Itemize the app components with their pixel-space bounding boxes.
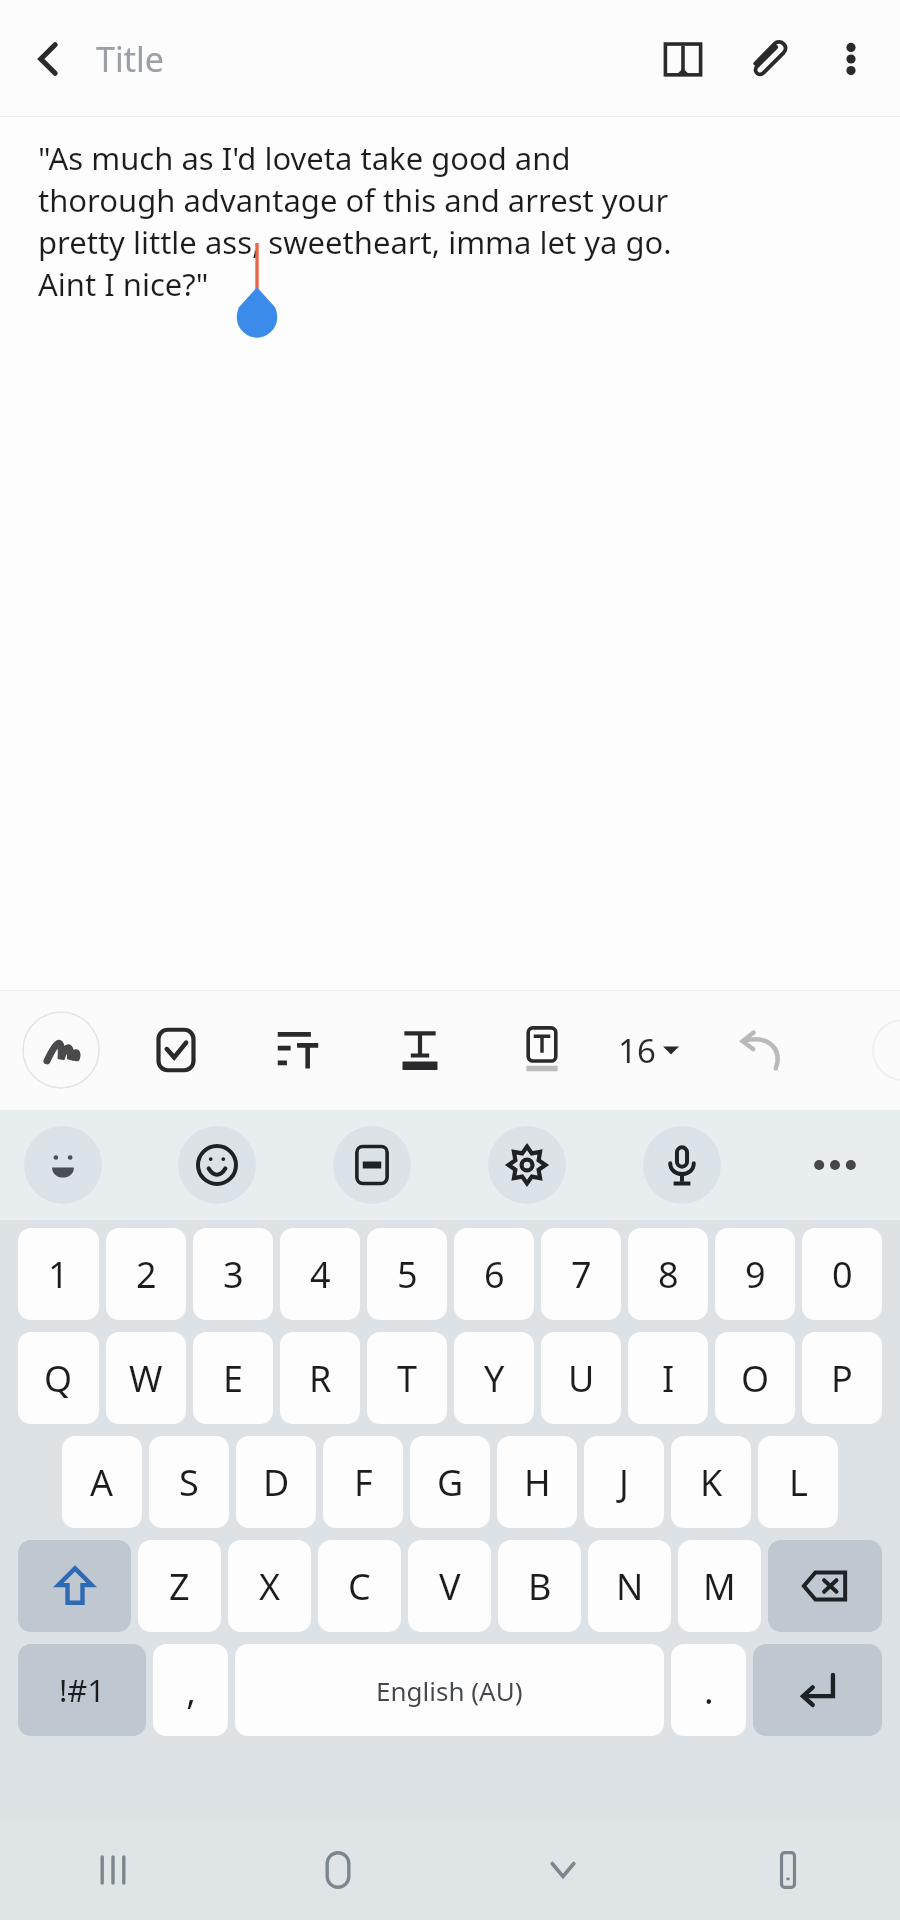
button[interactable]: S	[149, 1436, 229, 1528]
button[interactable]: 0	[802, 1228, 882, 1320]
button[interactable]: Attach	[726, 16, 812, 102]
button[interactable]: English (AU)	[235, 1644, 664, 1736]
staticText: 2	[136, 1250, 157, 1299]
button[interactable]: 8	[628, 1228, 708, 1320]
button[interactable]: Q	[18, 1332, 99, 1424]
staticText: 16	[618, 1028, 656, 1073]
button[interactable]: 6	[454, 1228, 534, 1320]
staticText: Q	[44, 1354, 73, 1403]
button[interactable]: Back	[10, 20, 88, 98]
button[interactable]: I	[628, 1332, 708, 1424]
button[interactable]: One-handed	[675, 1820, 900, 1920]
button[interactable]: M	[678, 1540, 761, 1632]
button[interactable]: Recents	[0, 1820, 225, 1920]
button[interactable]: C	[318, 1540, 401, 1632]
button[interactable]: Stickers	[178, 1126, 256, 1204]
staticText: 4	[310, 1250, 331, 1299]
staticText: M	[703, 1562, 736, 1611]
staticText: D	[263, 1458, 290, 1507]
button[interactable]: G	[410, 1436, 490, 1528]
staticText: B	[528, 1562, 552, 1611]
staticText: A	[90, 1458, 114, 1507]
button[interactable]: V	[408, 1540, 491, 1632]
staticText: !#1	[59, 1669, 106, 1711]
button[interactable]: Handwriting	[22, 1011, 100, 1089]
button[interactable]: 3	[193, 1228, 273, 1320]
staticText: F	[354, 1458, 373, 1507]
button[interactable]: H	[497, 1436, 577, 1528]
staticText: Z	[169, 1562, 190, 1611]
button[interactable]: Checklist	[136, 1010, 216, 1090]
staticText: T	[397, 1354, 418, 1403]
button[interactable]: .	[671, 1644, 746, 1736]
staticText: English (AU)	[376, 1673, 523, 1708]
staticText: K	[700, 1458, 723, 1507]
staticText: I	[662, 1354, 675, 1403]
button[interactable]: 4	[280, 1228, 360, 1320]
staticText: G	[437, 1458, 464, 1507]
button[interactable]: Backspace	[768, 1540, 882, 1632]
button[interactable]: Hide keyboard	[450, 1820, 675, 1920]
button[interactable]: Reading mode	[640, 16, 726, 102]
button[interactable]: More	[798, 1128, 872, 1202]
button[interactable]: Enter	[753, 1644, 882, 1736]
button[interactable]: 9	[715, 1228, 795, 1320]
button[interactable]: 1	[18, 1228, 99, 1320]
button[interactable]: E	[193, 1332, 273, 1424]
button[interactable]: U	[541, 1332, 621, 1424]
button[interactable]: 7	[541, 1228, 621, 1320]
button[interactable]: N	[588, 1540, 671, 1632]
button[interactable]: Z	[138, 1540, 221, 1632]
staticText: X	[259, 1562, 281, 1611]
button[interactable]: More options	[812, 20, 890, 98]
staticText: J	[619, 1458, 629, 1507]
staticText: U	[568, 1354, 595, 1403]
button[interactable]: Text box	[502, 1010, 582, 1090]
staticText: 1	[48, 1250, 69, 1299]
button[interactable]: Undo	[721, 1010, 801, 1090]
button[interactable]: 2	[106, 1228, 186, 1320]
button[interactable]: Shift	[18, 1540, 131, 1632]
staticText: Title	[96, 36, 164, 82]
staticText: W	[129, 1354, 163, 1403]
button[interactable]: D	[236, 1436, 316, 1528]
button[interactable]: T	[367, 1332, 447, 1424]
button[interactable]: Paragraph	[258, 1010, 338, 1090]
staticText: .	[704, 1666, 714, 1715]
button[interactable]: Home	[225, 1820, 450, 1920]
button[interactable]: K	[671, 1436, 751, 1528]
button[interactable]: R	[280, 1332, 360, 1424]
button[interactable]: GIF	[333, 1126, 411, 1204]
button[interactable]: B	[498, 1540, 581, 1632]
staticText: L	[789, 1458, 808, 1507]
staticText: N	[616, 1562, 644, 1611]
staticText: O	[741, 1354, 770, 1403]
button[interactable]: Emoji keyboard	[24, 1126, 102, 1204]
staticText: 5	[397, 1250, 418, 1299]
button[interactable]: 16	[612, 1010, 685, 1090]
button[interactable]: Y	[454, 1332, 534, 1424]
button[interactable]: Voice input	[643, 1126, 721, 1204]
button[interactable]: L	[758, 1436, 838, 1528]
staticText: 9	[745, 1250, 766, 1299]
staticText: 8	[658, 1250, 679, 1299]
button[interactable]: Keyboard settings	[488, 1126, 566, 1204]
button[interactable]: A	[62, 1436, 142, 1528]
staticText: E	[223, 1354, 244, 1403]
button[interactable]: X	[228, 1540, 311, 1632]
button[interactable]: ,	[153, 1644, 228, 1736]
staticText: "As much as I'd loveta take good and	[38, 137, 571, 179]
button[interactable]: 5	[367, 1228, 447, 1320]
button[interactable]: J	[584, 1436, 664, 1528]
staticText: 0	[832, 1250, 853, 1299]
staticText: R	[309, 1354, 332, 1403]
staticText: V	[439, 1562, 461, 1611]
button[interactable]: Text style	[380, 1010, 460, 1090]
staticText: 7	[571, 1250, 592, 1299]
staticText: 6	[484, 1250, 505, 1299]
button[interactable]: W	[106, 1332, 186, 1424]
button[interactable]: !#1	[18, 1644, 146, 1736]
button[interactable]: P	[802, 1332, 882, 1424]
button[interactable]: F	[323, 1436, 403, 1528]
button[interactable]: O	[715, 1332, 795, 1424]
